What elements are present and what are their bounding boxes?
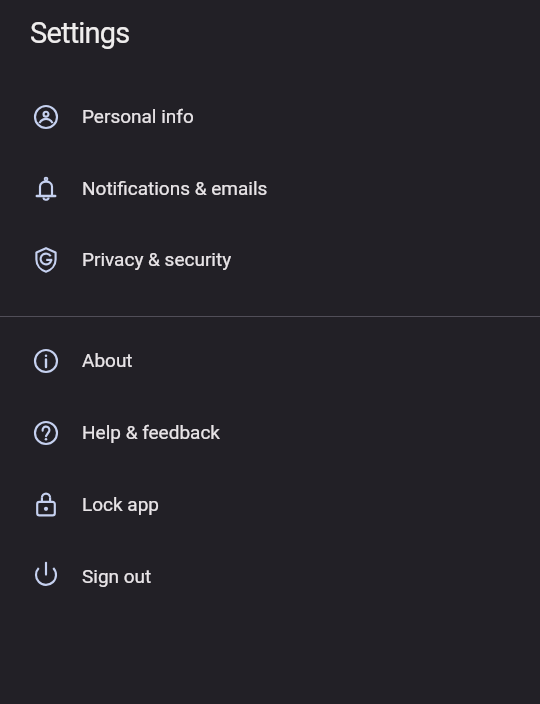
staticText: Help & feedback: [82, 421, 220, 443]
staticText: About: [82, 349, 133, 371]
staticText: Sign out: [82, 565, 152, 587]
staticText: Notifications & emails: [82, 177, 268, 199]
button[interactable]: Sign out: [0, 534, 540, 606]
button[interactable]: Help & feedback: [0, 390, 540, 462]
button[interactable]: About: [0, 318, 540, 390]
button[interactable]: Lock app: [0, 462, 540, 534]
staticText: Personal info: [82, 105, 194, 127]
staticText: Lock app: [82, 493, 160, 515]
button[interactable]: Personal info: [0, 74, 540, 146]
staticText: Settings: [30, 16, 130, 50]
staticText: Privacy & security: [82, 248, 232, 270]
button[interactable]: Privacy & security: [0, 217, 540, 289]
button[interactable]: Notifications & emails: [0, 146, 540, 218]
